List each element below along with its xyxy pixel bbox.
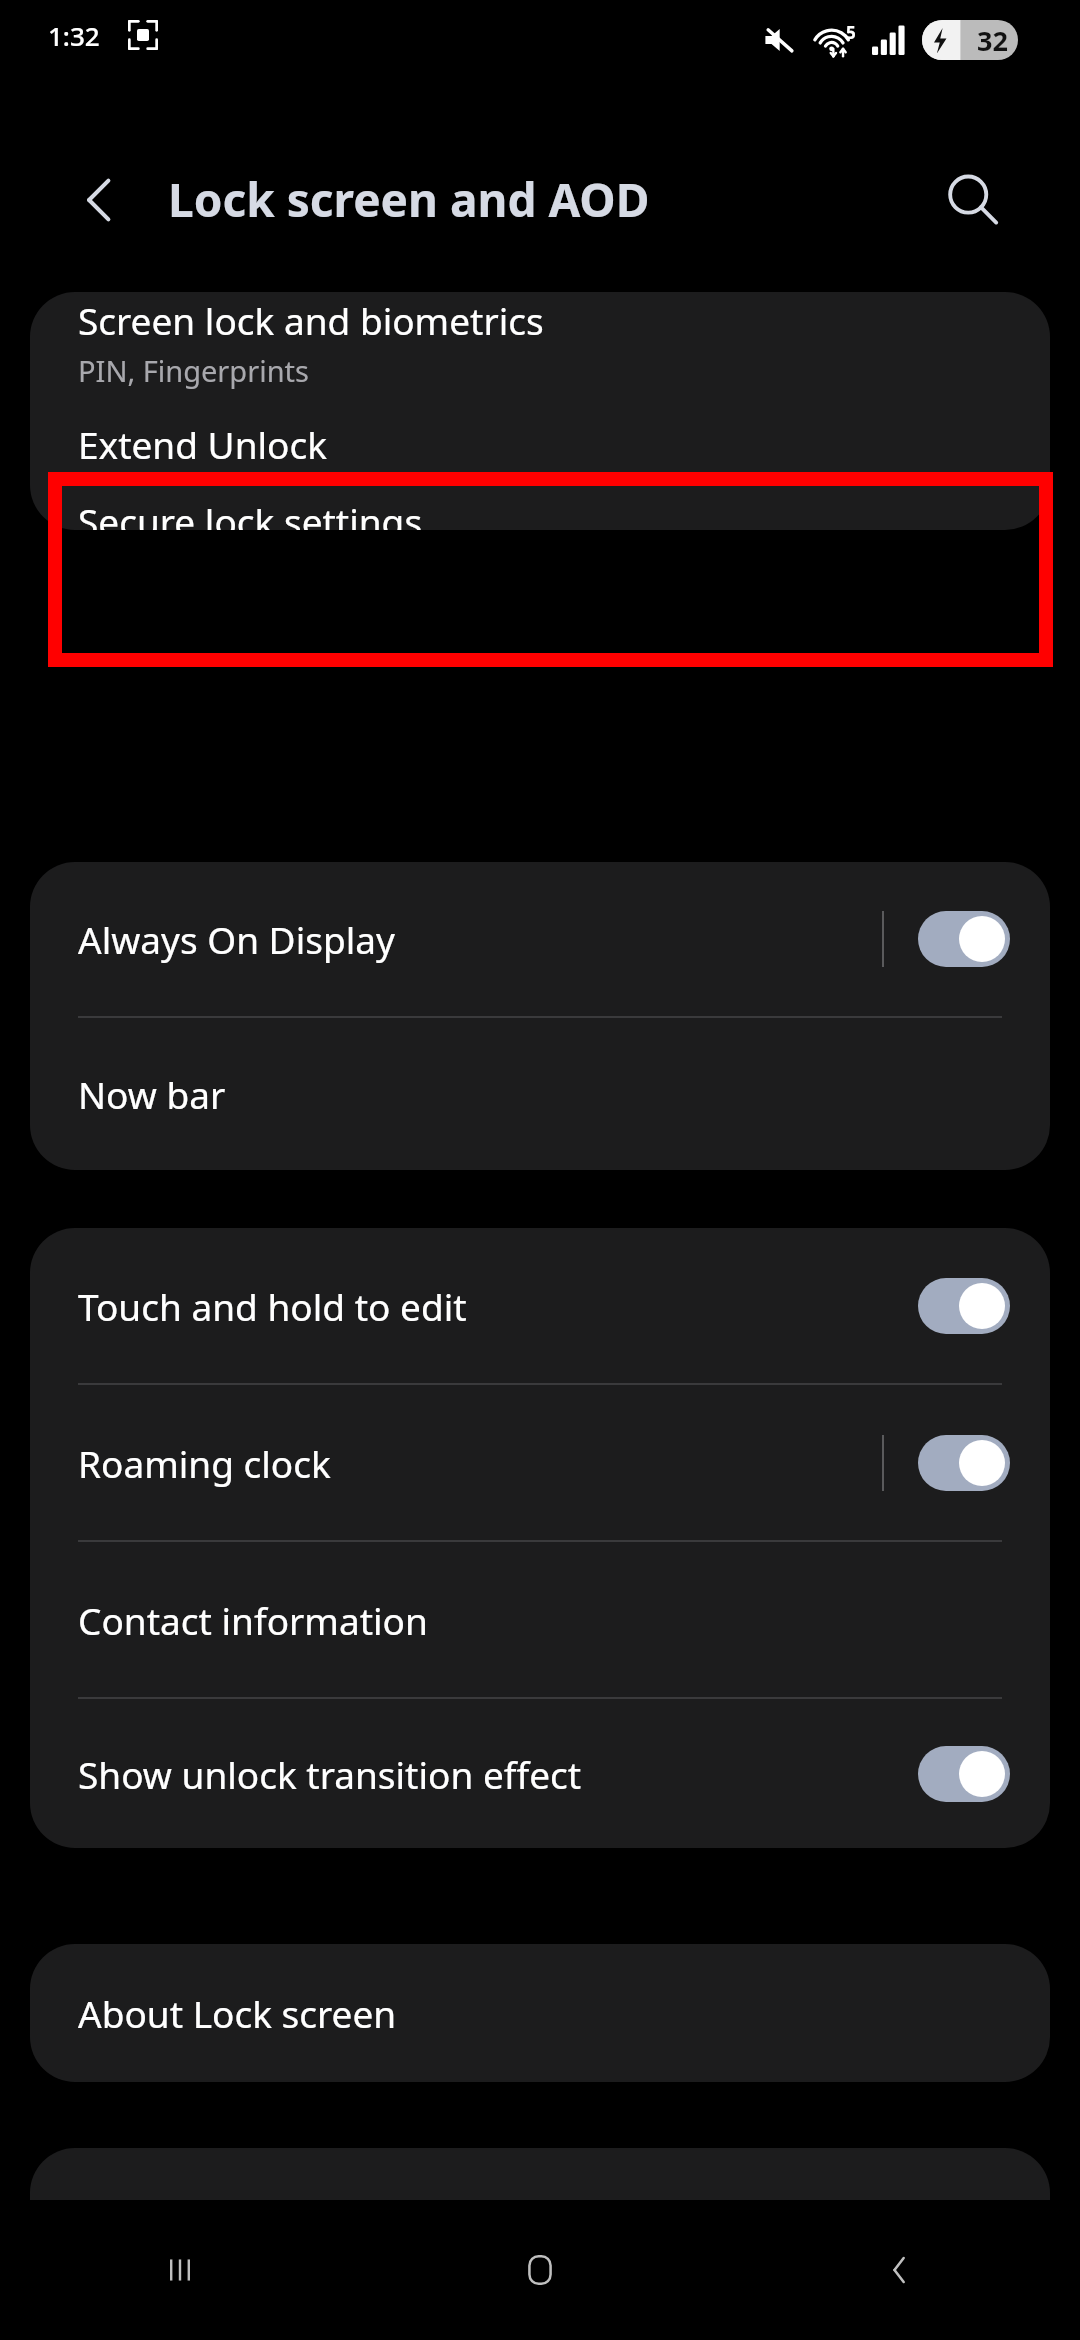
button[interactable]: Toggle bbox=[918, 1746, 1010, 1802]
button[interactable]: Touch and hold to edit bbox=[30, 1228, 1050, 1383]
staticText: Show unlock transition effect bbox=[78, 1749, 882, 1799]
staticText: Contact information bbox=[78, 1595, 428, 1645]
button[interactable]: Now bar bbox=[30, 1018, 1050, 1170]
staticText: Touch and hold to edit bbox=[78, 1281, 882, 1331]
staticText: Screen lock and biometrics bbox=[78, 295, 544, 345]
button[interactable]: Back bbox=[58, 158, 142, 242]
button[interactable]: Search bbox=[930, 158, 1014, 242]
staticText: 5 bbox=[846, 21, 856, 44]
staticText: Roaming clock bbox=[78, 1438, 882, 1488]
button[interactable]: Show unlock transition effect bbox=[30, 1699, 1050, 1848]
button[interactable]: Back bbox=[720, 2200, 1080, 2340]
staticText: PIN, Fingerprints bbox=[78, 351, 309, 390]
button[interactable]: Always On Display bbox=[30, 862, 1050, 1016]
button[interactable]: About Lock screen bbox=[30, 1944, 1050, 2082]
button[interactable] bbox=[30, 2148, 1050, 2288]
button[interactable]: Roaming clock bbox=[30, 1385, 1050, 1540]
staticText: Always On Display bbox=[78, 914, 882, 964]
button[interactable]: Contact information bbox=[30, 1542, 1050, 1697]
staticText: Extend Unlock bbox=[78, 419, 327, 469]
button[interactable]: Toggle bbox=[918, 1435, 1010, 1491]
staticText: About Lock screen bbox=[78, 1988, 397, 2038]
button[interactable]: Recents bbox=[0, 2200, 360, 2340]
staticText: 32 bbox=[977, 22, 1008, 59]
button[interactable]: Extend Unlock bbox=[30, 392, 1050, 496]
staticText: 1:32 bbox=[48, 18, 100, 53]
staticText: Secure lock settings bbox=[78, 496, 423, 530]
staticText: Lock screen and AOD bbox=[168, 168, 650, 231]
button[interactable]: Screen lock and biometrics bbox=[30, 292, 1050, 392]
staticText: Now bar bbox=[78, 1069, 226, 1119]
button[interactable]: Toggle bbox=[918, 911, 1010, 967]
button[interactable]: Home bbox=[360, 2200, 720, 2340]
button[interactable]: Toggle bbox=[918, 1278, 1010, 1334]
button[interactable]: Secure lock settings bbox=[30, 496, 1050, 530]
